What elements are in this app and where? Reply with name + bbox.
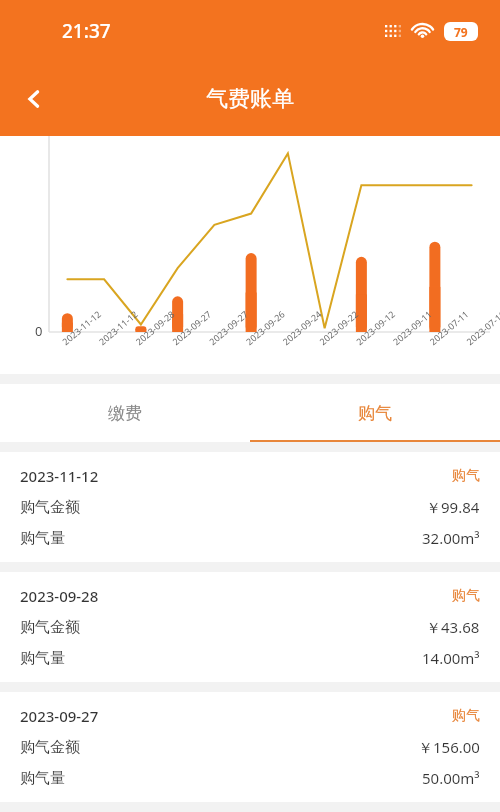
staticText: 2023-09-28 <box>20 586 99 606</box>
button[interactable]: 2023-11-12 <box>0 452 500 562</box>
staticText: 购气 <box>358 403 392 424</box>
staticText: 购气 <box>452 467 480 485</box>
staticText: 21:37 <box>62 18 111 44</box>
staticText: 2023-11-12 <box>20 466 99 486</box>
staticText: 购气金额 <box>20 618 80 637</box>
staticText: 缴费 <box>108 403 142 424</box>
staticText: 购气量 <box>20 769 65 788</box>
button[interactable]: 缴费 <box>0 384 250 442</box>
staticText: 79 <box>454 24 468 40</box>
staticText: 14.00m³ <box>422 648 480 668</box>
staticText: 2023-09-27 <box>20 706 99 726</box>
staticText: 32.00m³ <box>422 528 480 548</box>
staticText: 购气金额 <box>20 498 80 517</box>
staticText: ￥43.68 <box>426 617 480 637</box>
staticText: 购气 <box>452 587 480 605</box>
button[interactable]: 2023-09-27 <box>0 692 500 802</box>
staticText: 气费账单 <box>206 85 294 113</box>
staticText: 50.00m³ <box>422 768 480 788</box>
button[interactable]: Back <box>10 75 58 123</box>
button[interactable]: 购气 <box>250 384 500 442</box>
staticText: ￥99.84 <box>426 497 480 517</box>
staticText: 购气量 <box>20 649 65 668</box>
staticText: 购气量 <box>20 529 65 548</box>
staticText: 购气 <box>452 707 480 725</box>
button[interactable]: 2023-09-28 <box>0 572 500 682</box>
staticText: ￥156.00 <box>418 737 480 757</box>
staticText: 购气金额 <box>20 738 80 757</box>
